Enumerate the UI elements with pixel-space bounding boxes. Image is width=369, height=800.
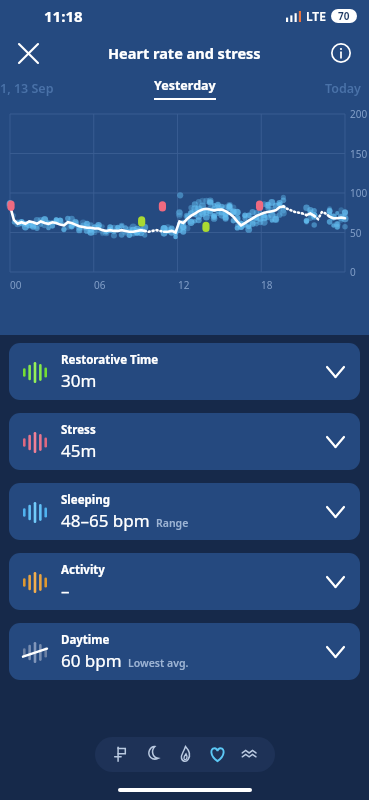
button[interactable]: Sleep [137,737,169,772]
staticText: Sleeping [61,492,110,508]
button[interactable]: Expand Daytime [312,629,358,675]
staticText: 06 [94,278,106,292]
button[interactable]: Expand Restorative Time [312,349,358,395]
button[interactable]: Stress [233,737,265,772]
staticText: 12 [178,278,190,292]
staticText: Lowest avg. [128,656,189,670]
button[interactable]: Sleeping [9,483,360,540]
staticText: Restorative Time [61,352,159,368]
button[interactable]: Energy [169,737,201,772]
button[interactable]: 1, 13 Sep [0,80,54,97]
staticText: 70 [338,9,350,23]
button[interactable]: Stress [9,413,360,470]
button[interactable]: Expand Stress [312,419,358,465]
staticText: Activity [61,562,105,578]
button[interactable]: Yesterday [154,77,216,100]
button[interactable]: Activity [9,553,360,610]
staticText: LTE [306,8,326,24]
staticText: – [61,579,70,602]
button[interactable]: Expand Sleeping [312,489,358,535]
button[interactable]: Restorative Time [9,343,360,400]
staticText: 45m [61,439,97,462]
button[interactable]: Daytime [9,623,360,680]
staticText: 150 [350,147,368,161]
staticText: 00 [10,278,22,292]
staticText: 50 [350,226,362,240]
button[interactable]: Heart rate [201,737,233,772]
button[interactable]: Today [325,80,361,97]
button[interactable]: Activity [105,737,137,772]
staticText: Daytime [61,632,110,648]
button[interactable]: Close [8,33,48,73]
staticText: Yesterday [154,77,216,94]
staticText: 60 bpm [61,649,122,672]
button[interactable]: Information [321,33,361,73]
staticText: Stress [61,422,96,438]
staticText: 18 [261,278,273,292]
staticText: 48–65 bpm [61,509,150,532]
staticText: Range [156,516,189,530]
staticText: 100 [350,186,368,200]
staticText: Heart rate and stress [108,43,261,63]
staticText: 200 [350,107,368,121]
staticText: 30m [61,369,97,392]
button[interactable]: Expand Activity [312,559,358,605]
staticText: 0 [350,265,356,279]
staticText: 11:18 [44,6,83,26]
